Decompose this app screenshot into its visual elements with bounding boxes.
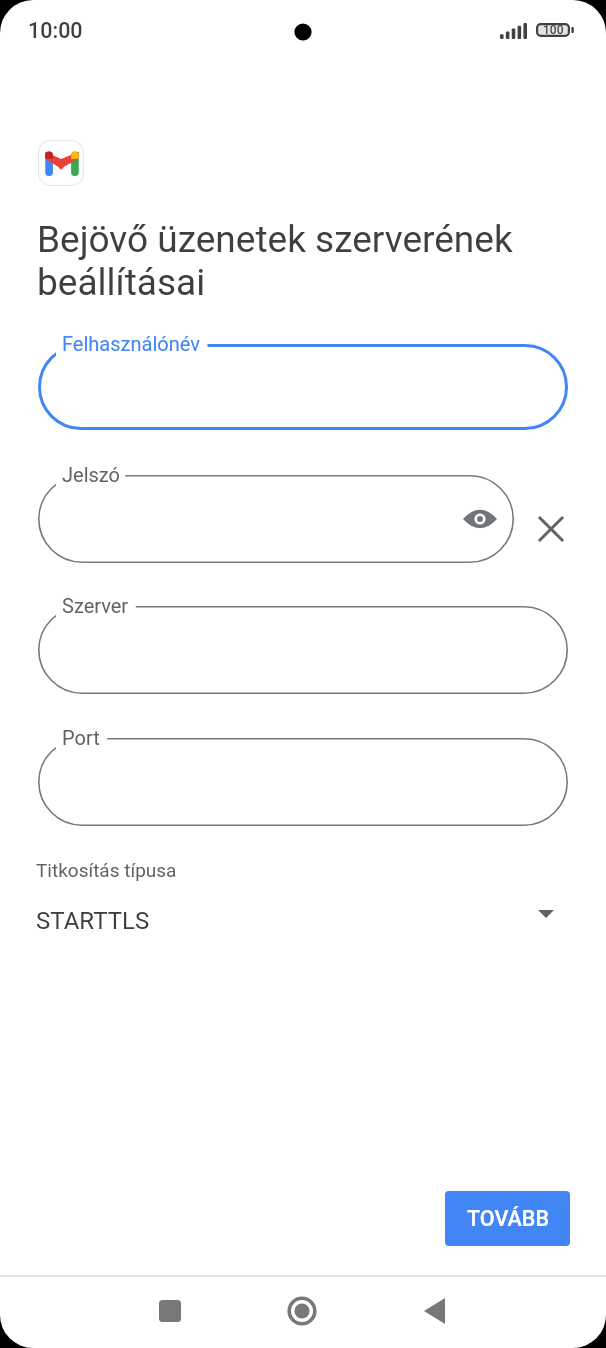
staticText: Szerver [62,594,129,617]
staticText: TOVÁBB [467,1206,549,1231]
button[interactable]: Jelszó [38,475,514,563]
button[interactable]: Titkosítás típusa [0,859,606,935]
button[interactable]: Szerver [38,606,568,694]
button[interactable]: Clear [524,502,578,556]
staticText: Port [62,726,100,749]
staticText: Jelszó [62,463,120,486]
button[interactable]: Back [406,1283,462,1339]
staticText: Titkosítás típusa [36,859,177,881]
button[interactable]: Felhasználónév [38,344,568,430]
staticText: 10:00 [28,18,83,43]
button[interactable]: Recents [142,1283,198,1339]
button[interactable]: Home [274,1283,330,1339]
button[interactable]: TOVÁBB [445,1191,570,1246]
staticText: 100 [543,23,564,37]
staticText: Bejövő üzenetek szerverének beállításai [37,218,557,304]
staticText: Felhasználónév [62,332,200,355]
staticText: STARTTLS [36,907,150,935]
button[interactable]: Show password [457,496,503,542]
button[interactable]: Port [38,738,568,826]
